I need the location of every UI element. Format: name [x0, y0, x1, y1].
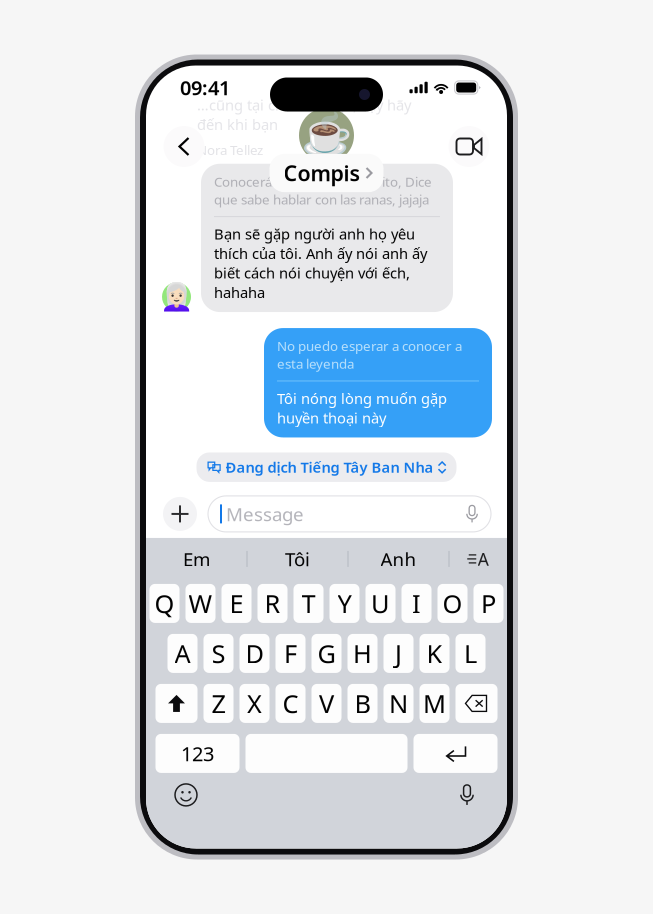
button[interactable]: F	[275, 634, 305, 673]
button[interactable]: Add attachment	[162, 496, 198, 532]
staticText: O	[442, 587, 462, 620]
staticText: A	[174, 637, 190, 670]
button[interactable]	[245, 734, 407, 773]
staticText: V	[319, 687, 334, 720]
staticText: P	[481, 587, 496, 620]
staticText: U	[371, 587, 390, 620]
button[interactable]: N	[383, 684, 413, 723]
button[interactable]: R	[257, 584, 287, 623]
button[interactable]: H	[347, 634, 377, 673]
button[interactable]: Anh	[348, 541, 448, 577]
staticText: R	[264, 587, 280, 620]
button[interactable]: Z	[203, 684, 233, 723]
staticText: H	[353, 637, 372, 670]
staticText: Y	[337, 587, 351, 620]
button[interactable]: I	[401, 584, 431, 623]
staticText: Tôi nóng lòng muốn gặp huyền thoại này	[277, 388, 447, 427]
staticText: Tôi	[285, 546, 310, 571]
staticText: G	[317, 637, 335, 670]
button[interactable]: P	[473, 584, 503, 623]
button[interactable]: T	[293, 584, 323, 623]
button[interactable]: C	[275, 684, 305, 723]
button[interactable]: Tôi	[247, 541, 347, 577]
staticText: ☕	[301, 112, 352, 159]
button[interactable]: V	[311, 684, 341, 723]
staticText: X	[247, 687, 262, 720]
button[interactable]: Em	[146, 541, 246, 577]
staticText: Q	[154, 587, 174, 620]
staticText: D	[245, 637, 263, 670]
button[interactable]: B	[347, 684, 377, 723]
staticText: J	[395, 637, 402, 670]
button[interactable]: Dictation	[445, 779, 489, 811]
staticText: Message	[226, 501, 304, 526]
button[interactable]: Back	[162, 124, 206, 168]
staticText: E	[229, 587, 243, 620]
staticText: Compis	[283, 159, 360, 187]
button[interactable]: L	[455, 634, 485, 673]
button[interactable]	[155, 684, 197, 723]
button[interactable]: FaceTime video call	[447, 124, 491, 168]
staticText: S	[211, 637, 225, 670]
staticText: 123	[181, 740, 214, 767]
button[interactable]: M	[419, 684, 449, 723]
button[interactable]: D	[239, 634, 269, 673]
staticText: 👩🏻‍🦳	[160, 282, 193, 312]
staticText: L	[464, 637, 477, 670]
staticText: Nora Tellez	[197, 141, 263, 159]
button[interactable]: Q	[149, 584, 179, 623]
button[interactable]	[455, 684, 497, 723]
staticText: W	[188, 587, 212, 620]
staticText: M	[423, 687, 446, 720]
staticText: F	[284, 637, 297, 670]
button[interactable]: S	[203, 634, 233, 673]
staticText: Bạn sẽ gặp người anh họ yêu thích của tô…	[214, 224, 427, 302]
button[interactable]	[413, 734, 497, 773]
staticText: N	[389, 687, 408, 720]
staticText: B	[354, 687, 370, 720]
button[interactable]: K	[419, 634, 449, 673]
staticText: Đang dịch Tiếng Tây Ban Nha	[225, 457, 433, 477]
button[interactable]: Đang dịch Tiếng Tây Ban Nha	[196, 452, 456, 482]
button[interactable]: 123	[155, 734, 239, 773]
button[interactable]: E	[221, 584, 251, 623]
staticText: K	[426, 637, 442, 670]
staticText: Z	[211, 687, 225, 720]
button[interactable]: A	[167, 634, 197, 673]
staticText: …cũng tại chỗ làm việc, vậy hãy đến khi …	[197, 95, 411, 134]
staticText: T	[301, 587, 315, 620]
staticText: Anh	[380, 546, 416, 571]
button[interactable]: J	[383, 634, 413, 673]
staticText: C	[282, 687, 298, 720]
staticText: I	[412, 587, 421, 620]
button[interactable]: W	[185, 584, 215, 623]
button[interactable]: G	[311, 634, 341, 673]
staticText: Em	[183, 546, 210, 571]
button[interactable]: Compis, conversation details	[269, 108, 383, 201]
button[interactable]: Message	[208, 496, 491, 532]
button[interactable]: O	[437, 584, 467, 623]
staticText: No puedo esperar a conocer a esta leyend…	[277, 337, 462, 372]
button[interactable]: Text formatting	[449, 541, 506, 577]
button[interactable]: X	[239, 684, 269, 723]
staticText: Conocerás a mi primo favorito, Dice que …	[214, 173, 432, 208]
button[interactable]: Emoji keyboard	[164, 779, 208, 811]
staticText: 09:41	[180, 74, 230, 101]
button[interactable]: Y	[329, 584, 359, 623]
staticText: A	[478, 547, 489, 570]
button[interactable]: U	[365, 584, 395, 623]
